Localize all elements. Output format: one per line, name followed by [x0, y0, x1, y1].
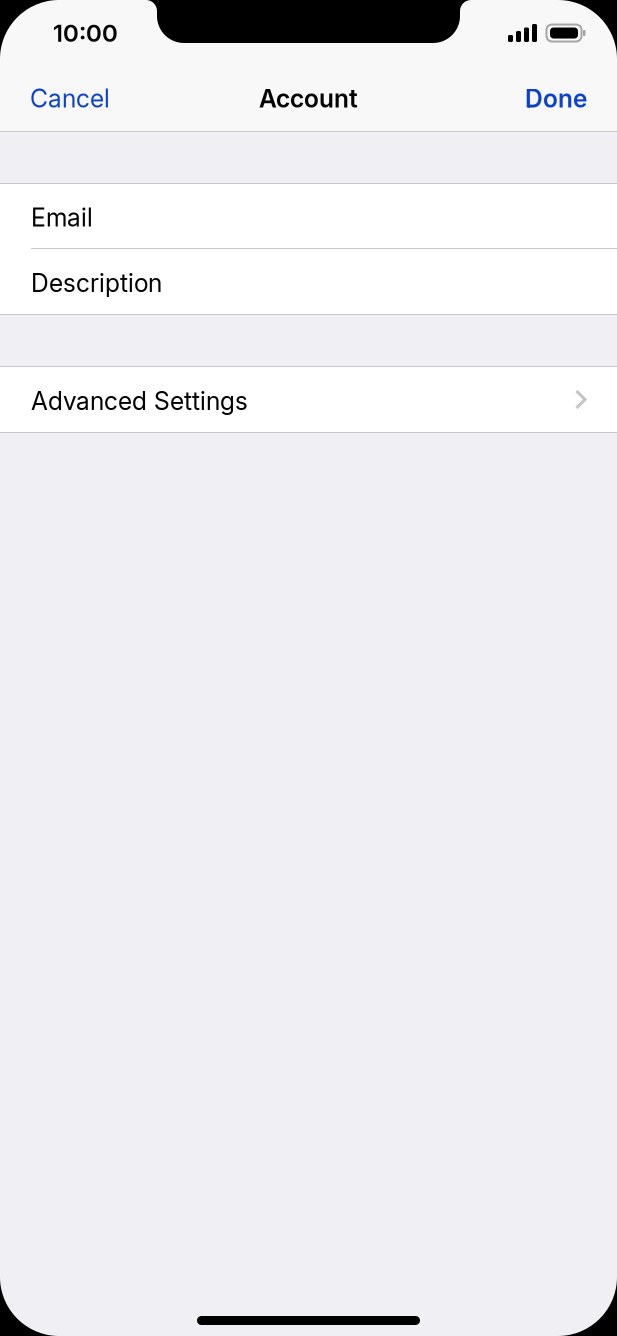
button[interactable]: Email: [0, 184, 617, 248]
staticText: 10:00: [53, 18, 118, 47]
staticText: Done: [525, 84, 587, 113]
button[interactable]: Done: [505, 70, 617, 127]
staticText: Cancel: [30, 84, 110, 113]
staticText: Advanced Settings: [31, 386, 248, 416]
button[interactable]: Advanced Settings: [0, 367, 617, 432]
button[interactable]: Cancel: [0, 70, 130, 127]
staticText: Description: [31, 268, 162, 298]
staticText: Email: [31, 203, 93, 232]
button[interactable]: Description: [0, 249, 617, 314]
staticText: Account: [259, 84, 358, 113]
